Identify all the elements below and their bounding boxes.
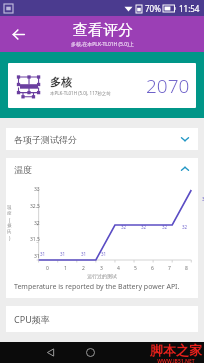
staticText: 32 — [34, 220, 40, 227]
staticText: 5 — [134, 265, 137, 272]
staticText: 3 — [100, 265, 103, 272]
staticText: 本PLK-TL01H (5.0), 117秒之前 — [50, 90, 111, 96]
button[interactable]: CPU频率 — [6, 306, 198, 332]
button[interactable]: Back — [30, 342, 70, 363]
button[interactable]: 多核 — [8, 63, 196, 108]
staticText: 32 — [141, 224, 147, 230]
staticText: 31 — [60, 251, 66, 257]
staticText: 度 — [7, 211, 12, 217]
staticText: 31 — [34, 253, 40, 260]
staticText: 各项子测试得分 — [14, 134, 77, 145]
staticText: ) — [9, 235, 11, 241]
staticText: Temperature is reported by the Battery p… — [14, 282, 180, 292]
staticText: 1 — [64, 265, 67, 272]
staticText: 运行过的测试 — [87, 273, 117, 279]
button[interactable]: 温度 — [6, 158, 198, 180]
staticText: WWW.JB51.NET — [157, 358, 195, 363]
staticText: CPU频率 — [14, 313, 50, 325]
staticText: 31 — [101, 251, 107, 257]
staticText: 33 — [34, 186, 40, 193]
staticText: 32.5 — [30, 203, 40, 210]
staticText: 7 — [168, 265, 171, 272]
staticText: 2 — [82, 265, 85, 272]
staticText: 6 — [151, 265, 154, 272]
button[interactable]: Back — [4, 20, 32, 48]
staticText: 多核 — [50, 75, 72, 89]
staticText: 查看评分 — [73, 21, 133, 40]
staticText: 11:54 — [179, 3, 200, 14]
staticText: 温度 — [14, 164, 32, 175]
staticText: 2070 — [146, 73, 190, 99]
staticText: 32 — [162, 224, 168, 230]
staticText: 31 — [40, 251, 46, 257]
staticText: 70% — [145, 3, 161, 14]
staticText: 脚本之家 — [150, 342, 202, 358]
staticText: 31.5 — [30, 236, 40, 243]
staticText: 32 — [182, 224, 188, 230]
button[interactable]: Home — [70, 342, 110, 363]
staticText: 温 — [7, 205, 12, 211]
button[interactable]: 各项子测试得分 — [6, 128, 198, 150]
staticText: 0 — [46, 265, 49, 272]
staticText: 33 — [202, 196, 204, 202]
staticText: 多核,在本PLK-TL01H (5.0)上 — [71, 41, 134, 48]
staticText: 8 — [185, 265, 188, 272]
staticText: 31 — [81, 251, 87, 257]
staticText: 4 — [117, 265, 120, 272]
staticText: ( — [9, 217, 11, 223]
staticText: 32 — [121, 224, 127, 230]
staticText: 氏 — [7, 229, 12, 235]
staticText: 摄 — [7, 223, 12, 229]
